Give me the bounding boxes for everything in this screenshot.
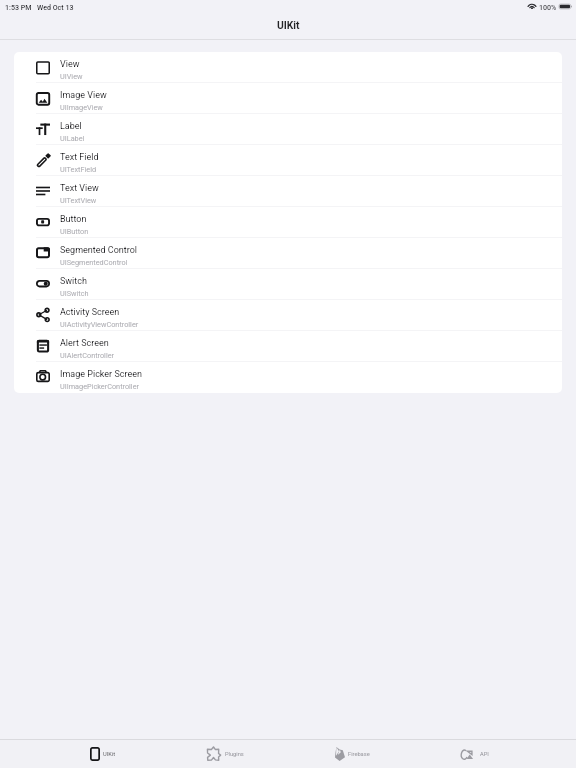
staticText: Firebase [348,751,370,758]
staticText: Segmented Control [60,245,138,256]
button[interactable]: Firebase [335,740,370,768]
staticText: UIView [60,72,83,81]
staticText: UIKit [103,751,116,758]
staticText: Activity Screen [60,307,120,318]
button[interactable]: Image Picker Screen [14,362,562,393]
staticText: UIActivityViewController [60,320,139,329]
staticText: View [60,59,80,70]
staticText: UIButton [60,227,89,236]
staticText: Text View [60,183,99,194]
button[interactable]: Label [14,114,562,145]
staticText: Plugins [225,751,244,758]
staticText: UIAlertController [60,351,115,360]
staticText: Image View [60,90,107,101]
button[interactable]: Text Field [14,145,562,176]
staticText: API [480,751,489,758]
staticText: UITextView [60,196,97,205]
staticText: Label [60,121,82,132]
staticText: UISwitch [60,289,89,298]
staticText: Button [60,214,87,225]
staticText: Switch [60,276,87,287]
button[interactable]: Button [14,207,562,238]
staticText: Wed Oct 13 [37,3,74,11]
staticText: UIImagePickerController [60,382,139,391]
button[interactable]: Plugins [207,740,244,768]
button[interactable]: UIKit [90,740,116,768]
staticText: Text Field [60,152,99,163]
button[interactable]: API [461,740,489,768]
staticText: UIImageView [60,103,103,112]
button[interactable]: Text View [14,176,562,207]
staticText: Image Picker Screen [60,369,142,380]
staticText: UILabel [60,134,85,143]
button[interactable]: Alert Screen [14,331,562,362]
button[interactable]: Switch [14,269,562,300]
staticText: UISegmentedControl [60,258,128,267]
button[interactable]: Activity Screen [14,300,562,331]
staticText: UITextField [60,165,97,174]
staticText: Alert Screen [60,338,109,349]
button[interactable]: Segmented Control [14,238,562,269]
button[interactable]: Image View [14,83,562,114]
staticText: UIKit [277,19,300,31]
button[interactable]: View [14,52,562,83]
staticText: 100% [539,3,557,11]
staticText: 1:53 PM [5,3,32,11]
